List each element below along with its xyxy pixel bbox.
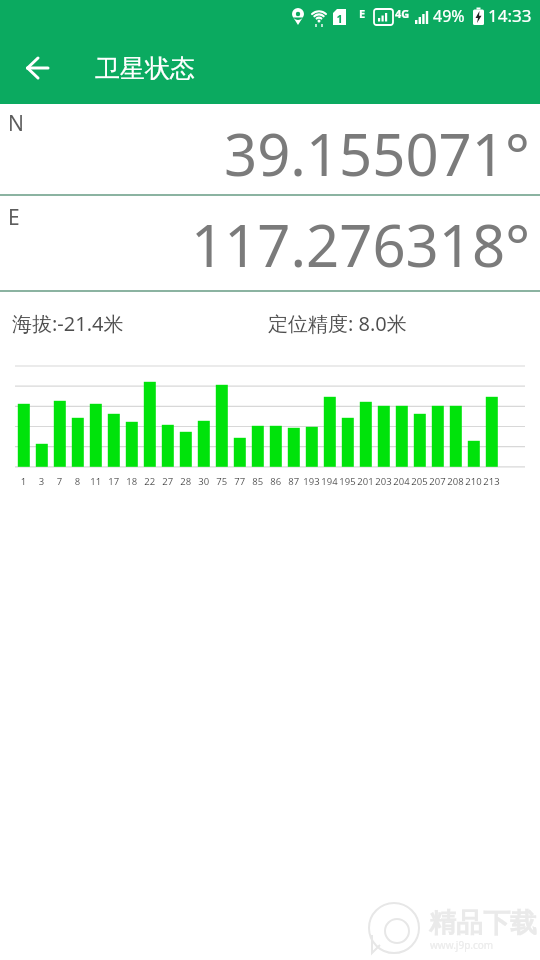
staticText: N <box>8 109 24 138</box>
staticText: E <box>8 203 20 232</box>
staticText: 精品下载 <box>429 906 537 940</box>
staticText: 定位精度: 8.0米 <box>268 310 407 337</box>
staticText: 117.276318° <box>191 205 530 284</box>
staticText: 39.155071° <box>224 114 530 193</box>
staticText: 海拔:-21.4米 <box>12 310 124 337</box>
staticText: 卫星状态 <box>95 53 195 84</box>
button[interactable] <box>14 46 62 94</box>
staticText: www.j9p.com <box>430 938 494 952</box>
